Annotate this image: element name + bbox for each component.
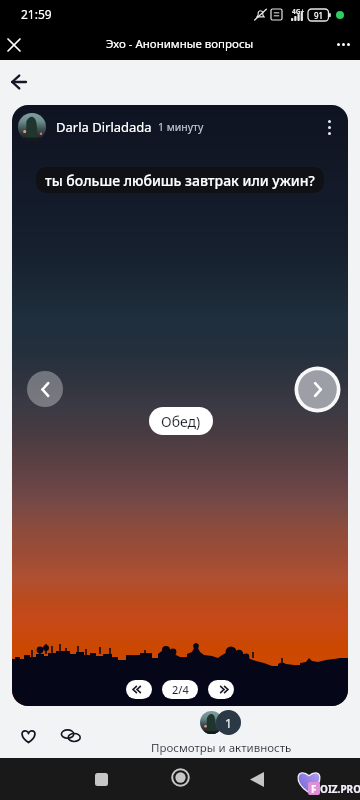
staticText: 91 (314, 10, 324, 21)
button[interactable] (208, 680, 234, 699)
button[interactable]: More options (329, 30, 357, 58)
staticText: OIZ.PRO (320, 782, 360, 796)
button[interactable]: Post menu (316, 114, 342, 140)
staticText: F (311, 782, 317, 795)
staticText: 1 (225, 715, 232, 731)
button[interactable]: 2/4 (162, 680, 198, 699)
button[interactable]: Home (166, 763, 194, 791)
button[interactable]: Recents (87, 765, 115, 793)
button[interactable]: Like (14, 722, 42, 750)
staticText: Darla Dirladada (56, 118, 152, 136)
staticText: Эхо - Анонимные вопросы (106, 36, 254, 52)
staticText: Просмотры и активность (151, 740, 292, 756)
button[interactable]: Previous (27, 371, 63, 407)
staticText: 1 минуту (158, 120, 204, 134)
button[interactable] (126, 680, 152, 699)
button[interactable]: Next (294, 366, 341, 413)
staticText: 4G+ (292, 7, 305, 16)
button[interactable]: Close (0, 31, 27, 58)
button[interactable]: Comments (57, 722, 85, 750)
staticText: ты больше любишь завтрак или ужин? (45, 171, 315, 190)
button[interactable]: Обед) (149, 407, 213, 435)
staticText: Обед) (161, 412, 201, 431)
staticText: 21:59 (21, 6, 52, 22)
button[interactable]: Back (243, 765, 271, 793)
staticText: 2/4 (172, 682, 189, 697)
button[interactable]: Back (2, 66, 34, 98)
